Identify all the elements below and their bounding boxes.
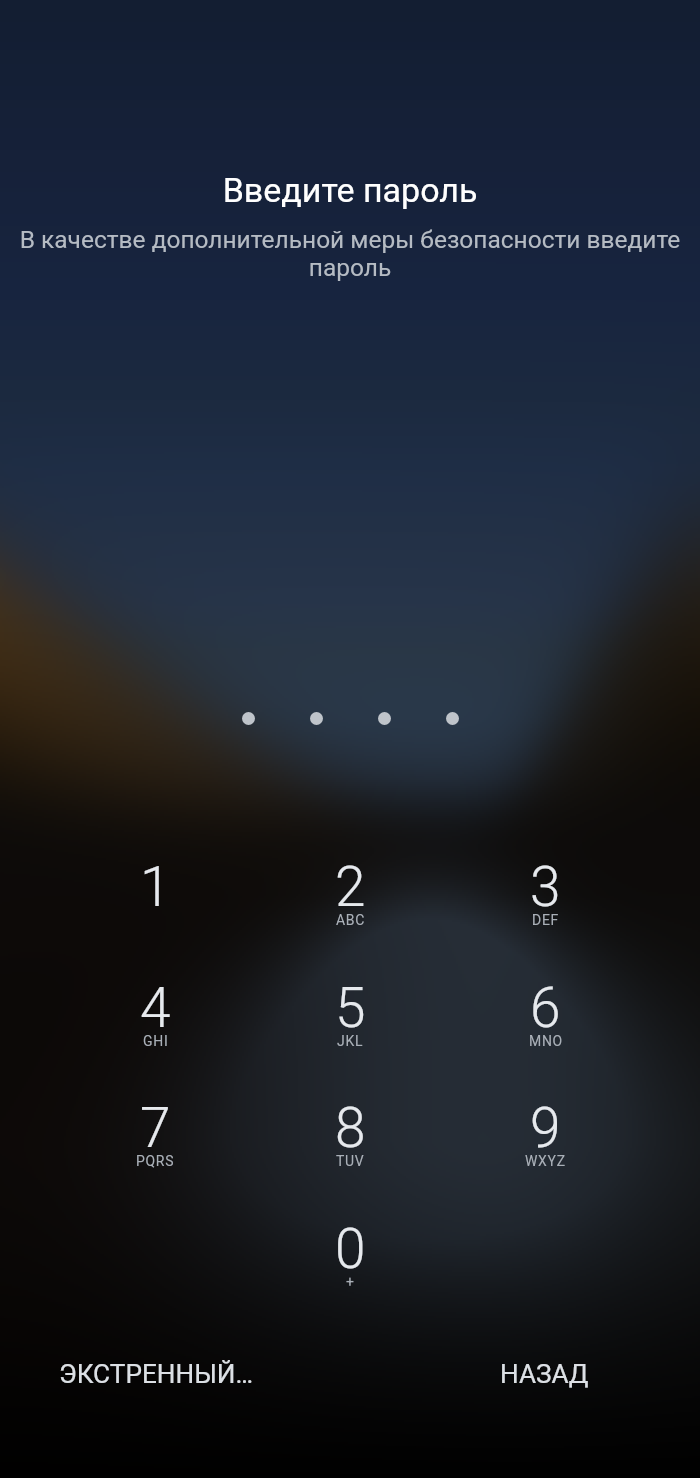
staticText: 2: [335, 855, 366, 919]
staticText: ABC: [336, 912, 366, 928]
staticText: 7: [140, 1096, 171, 1160]
staticText: +: [346, 1274, 355, 1290]
button[interactable]: ЭКСТРЕННЫЙ…: [43, 1347, 270, 1402]
staticText: MNO: [529, 1033, 563, 1049]
staticText: TUV: [336, 1153, 365, 1169]
button[interactable]: 5: [253, 973, 448, 1059]
button[interactable]: 6: [448, 973, 643, 1059]
staticText: В качестве дополнительной меры безопасно…: [6, 225, 694, 282]
staticText: WXYZ: [525, 1153, 566, 1169]
staticText: 8: [335, 1096, 366, 1160]
staticText: 6: [530, 976, 561, 1040]
button[interactable]: 2: [253, 852, 448, 938]
staticText: 1: [140, 855, 171, 919]
staticText: НАЗАД: [500, 1359, 589, 1390]
button[interactable]: 1: [58, 852, 253, 938]
button[interactable]: 0: [253, 1214, 448, 1300]
staticText: 0: [335, 1217, 366, 1281]
staticText: ЭКСТРЕННЫЙ…: [59, 1359, 254, 1390]
staticText: PQRS: [136, 1153, 175, 1169]
button[interactable]: 4: [58, 973, 253, 1059]
staticText: 4: [140, 976, 171, 1040]
staticText: 3: [530, 855, 561, 919]
staticText: GHI: [143, 1033, 169, 1049]
staticText: 5: [335, 976, 366, 1040]
staticText: DEF: [532, 912, 559, 928]
button[interactable]: 8: [253, 1093, 448, 1179]
button[interactable]: 3: [448, 852, 643, 938]
button[interactable]: 9: [448, 1093, 643, 1179]
button[interactable]: 7: [58, 1093, 253, 1179]
button[interactable]: НАЗАД: [484, 1347, 605, 1402]
staticText: JKL: [337, 1033, 364, 1049]
staticText: 9: [530, 1096, 561, 1160]
staticText: Введите пароль: [0, 170, 700, 210]
